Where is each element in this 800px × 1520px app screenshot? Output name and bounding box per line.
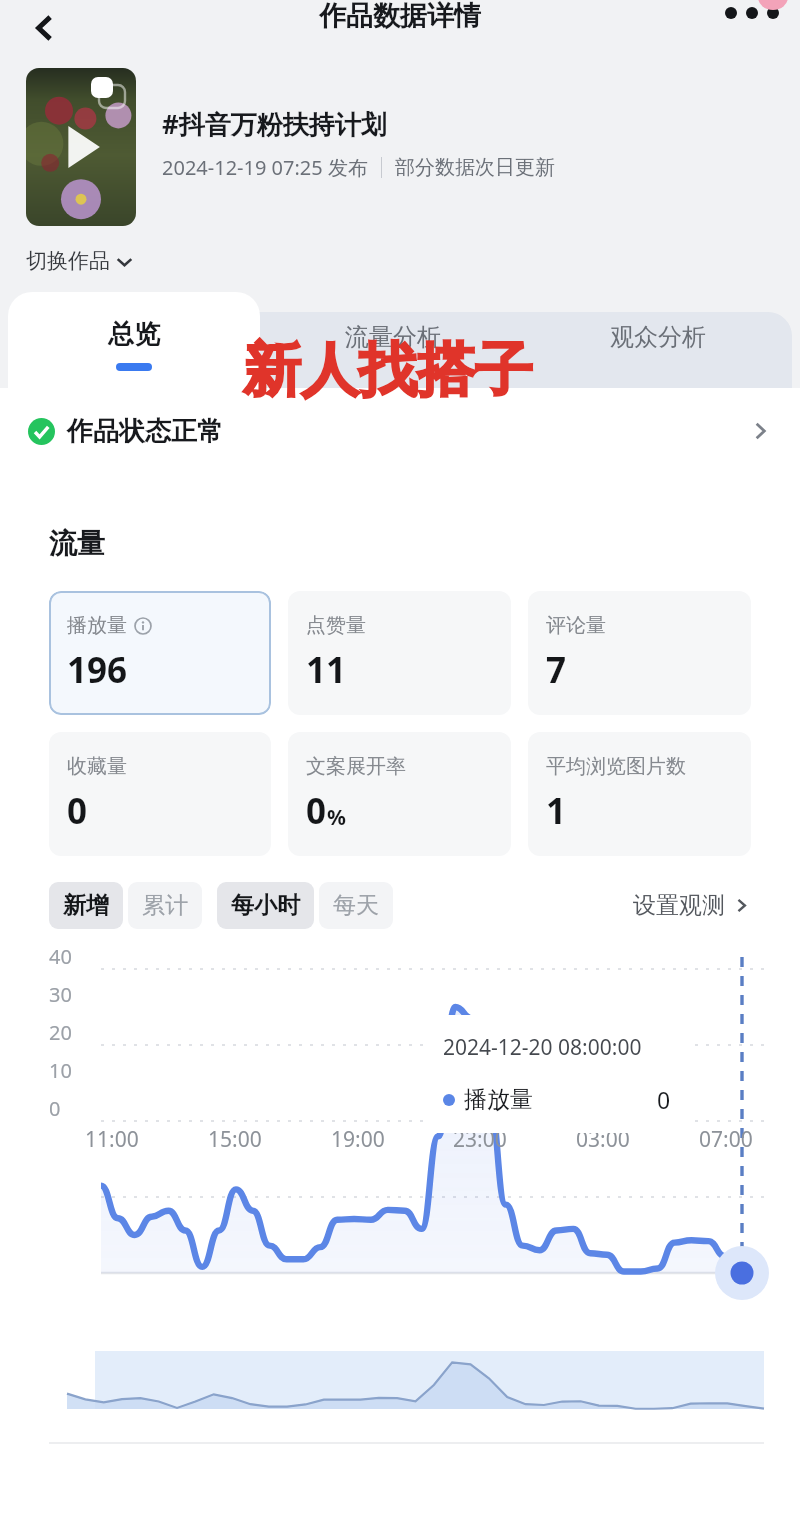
staticText: 切换作品 [26, 248, 110, 274]
button[interactable]: 总览 [8, 292, 260, 388]
button[interactable]: 评论量 [528, 591, 751, 715]
staticText: 点赞量 [306, 613, 366, 638]
staticText: 10 [49, 1057, 72, 1084]
button[interactable]: Video thumbnail [26, 68, 136, 226]
staticText: 11 [306, 646, 347, 694]
staticText: 20 [49, 1019, 72, 1046]
staticText: % [327, 803, 346, 832]
staticText: 07:00 [699, 1125, 753, 1154]
button[interactable]: 文案展开率 [288, 732, 511, 856]
button[interactable]: 平均浏览图片数 [528, 732, 751, 856]
button[interactable]: 新增 [49, 882, 123, 929]
staticText: 文案展开率 [306, 754, 406, 779]
staticText: 40 [49, 943, 72, 970]
staticText: 196 [67, 646, 128, 694]
button[interactable]: More options [720, 0, 784, 44]
staticText: 0 [67, 787, 88, 835]
staticText: 2024-12-20 08:00:00 [443, 1033, 642, 1062]
button[interactable]: 收藏量 [49, 732, 271, 856]
staticText: 19:00 [331, 1125, 385, 1154]
staticText: 30 [49, 981, 72, 1008]
button[interactable]: 作品状态正常 [0, 388, 800, 474]
staticText: 累计 [142, 891, 188, 920]
staticText: 2024-12-19 07:25 发布 [162, 154, 368, 181]
staticText: 流量分析 [345, 322, 441, 352]
staticText: 收藏量 [67, 754, 127, 779]
staticText: 0 [306, 787, 327, 835]
staticText: 设置观测 [633, 891, 725, 920]
staticText: 每小时 [231, 891, 300, 920]
staticText: 新人找搭子 [243, 334, 533, 407]
staticText: 作品数据详情 [319, 0, 481, 33]
staticText: 11:00 [85, 1125, 139, 1154]
staticText: 流量 [49, 526, 105, 561]
staticText: 部分数据次日更新 [395, 155, 555, 180]
staticText: 15:00 [208, 1125, 262, 1154]
staticText: 总览 [108, 318, 160, 351]
button[interactable]: 每天 [319, 882, 393, 929]
staticText: 0 [49, 1095, 61, 1122]
button[interactable]: Back [18, 1, 72, 55]
staticText: 播放量 [464, 1085, 533, 1114]
staticText: 新增 [63, 891, 109, 920]
staticText: 0 [657, 1084, 671, 1115]
button[interactable]: 观众分析 [525, 322, 790, 388]
staticText: 播放量 [67, 613, 127, 638]
staticText: 03:00 [576, 1125, 630, 1154]
button[interactable]: 切换作品 [26, 248, 133, 274]
staticText: 23:00 [453, 1125, 507, 1154]
button[interactable]: 设置观测 [633, 891, 751, 920]
staticText: 7 [546, 646, 567, 694]
button[interactable]: 点赞量 [288, 591, 511, 715]
staticText: 1 [546, 787, 567, 835]
staticText: 作品状态正常 [67, 415, 223, 448]
button[interactable]: 播放量 [49, 591, 271, 715]
staticText: 评论量 [546, 613, 606, 638]
button[interactable]: 累计 [128, 882, 202, 929]
staticText: 每天 [333, 891, 379, 920]
staticText: #抖音万粉扶持计划 [162, 106, 387, 142]
staticText: 平均浏览图片数 [546, 754, 686, 779]
button[interactable]: 流量分析 [260, 322, 525, 388]
staticText: 观众分析 [610, 322, 706, 352]
button[interactable]: 每小时 [217, 882, 314, 929]
